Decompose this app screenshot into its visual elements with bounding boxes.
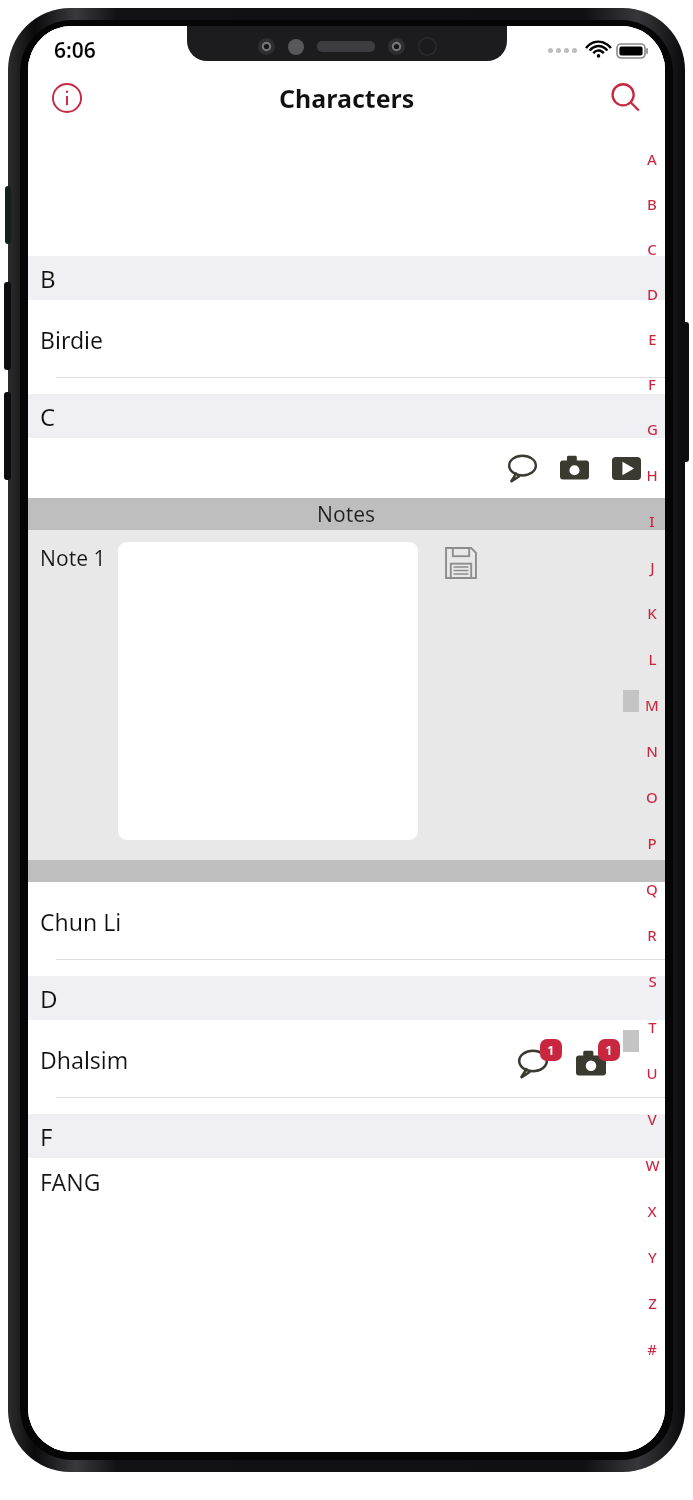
staticText: R bbox=[647, 925, 657, 945]
staticText: H bbox=[646, 465, 658, 485]
button[interactable]: Dhalsim bbox=[28, 1020, 665, 1114]
staticText: N bbox=[646, 741, 658, 761]
button[interactable]: Chun Li bbox=[28, 882, 665, 976]
staticText: G bbox=[647, 419, 658, 439]
button[interactable]: Notes bbox=[505, 451, 539, 485]
staticText: P bbox=[647, 833, 657, 853]
staticText: Birdie bbox=[40, 324, 103, 355]
staticText: Note 1 bbox=[40, 544, 106, 573]
button[interactable]: Search bbox=[601, 73, 651, 123]
staticText: 6:06 bbox=[54, 36, 96, 65]
staticText: C bbox=[40, 400, 56, 433]
staticText: Dhalsim bbox=[40, 1044, 129, 1075]
staticText: M bbox=[645, 695, 659, 715]
button[interactable]: Photo bbox=[557, 451, 591, 485]
staticText: 1 bbox=[547, 1041, 555, 1059]
staticText: K bbox=[647, 603, 657, 623]
button[interactable]: Birdie bbox=[28, 300, 665, 394]
staticText: E bbox=[648, 329, 657, 349]
staticText: D bbox=[40, 982, 58, 1015]
staticText: T bbox=[648, 1017, 657, 1037]
staticText: Y bbox=[648, 1247, 657, 1267]
staticText: Characters bbox=[279, 81, 415, 115]
staticText: U bbox=[646, 1063, 658, 1083]
staticText: S bbox=[648, 971, 657, 991]
staticText: Notes bbox=[317, 500, 376, 529]
staticText: O bbox=[646, 787, 658, 807]
staticText: C bbox=[647, 239, 657, 259]
staticText: A bbox=[647, 149, 657, 169]
staticText: D bbox=[647, 284, 658, 304]
staticText: Chun Li bbox=[40, 906, 122, 937]
staticText: V bbox=[647, 1109, 657, 1129]
staticText: B bbox=[647, 194, 657, 214]
staticText: B bbox=[40, 262, 56, 295]
staticText: W bbox=[645, 1155, 660, 1175]
staticText: 1 bbox=[605, 1041, 613, 1059]
button[interactable]: 1 bbox=[518, 1039, 562, 1083]
staticText: I bbox=[649, 511, 655, 531]
staticText: F bbox=[40, 1120, 53, 1153]
staticText: Q bbox=[646, 879, 658, 899]
staticText: FANG bbox=[40, 1166, 101, 1197]
staticText: L bbox=[648, 649, 657, 669]
staticText: Z bbox=[648, 1293, 657, 1313]
button[interactable]: 1 bbox=[576, 1039, 620, 1083]
staticText: # bbox=[647, 1339, 657, 1359]
staticText: X bbox=[647, 1201, 657, 1221]
button[interactable]: Information bbox=[42, 73, 92, 123]
staticText: F bbox=[648, 374, 656, 394]
button[interactable]: Video bbox=[609, 451, 643, 485]
button[interactable]: Alphabet index bbox=[639, 136, 665, 1372]
staticText: J bbox=[650, 557, 655, 577]
button[interactable]: Save bbox=[440, 542, 482, 584]
